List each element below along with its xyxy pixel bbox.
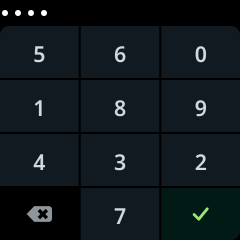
- button[interactable]: 8: [81, 80, 159, 132]
- staticText: 1: [33, 94, 45, 122]
- button[interactable]: 0: [161, 26, 240, 78]
- staticText: 8: [114, 94, 126, 122]
- button[interactable]: 1: [0, 80, 79, 132]
- button[interactable]: 5: [0, 26, 79, 78]
- button[interactable]: 3: [81, 134, 159, 186]
- button[interactable]: 4: [0, 134, 79, 186]
- button[interactable]: Delete: [0, 188, 79, 240]
- button[interactable]: 6: [81, 26, 159, 78]
- staticText: 7: [114, 202, 126, 230]
- staticText: 6: [114, 40, 126, 68]
- button[interactable]: 7: [81, 188, 159, 240]
- staticText: 2: [195, 148, 207, 176]
- staticText: 0: [195, 40, 207, 68]
- button[interactable]: 2: [161, 134, 240, 186]
- staticText: 5: [33, 40, 45, 68]
- staticText: 4: [33, 148, 45, 176]
- staticText: 9: [195, 94, 207, 122]
- button[interactable]: Confirm: [161, 188, 240, 240]
- button[interactable]: 9: [161, 80, 240, 132]
- staticText: 3: [114, 148, 126, 176]
